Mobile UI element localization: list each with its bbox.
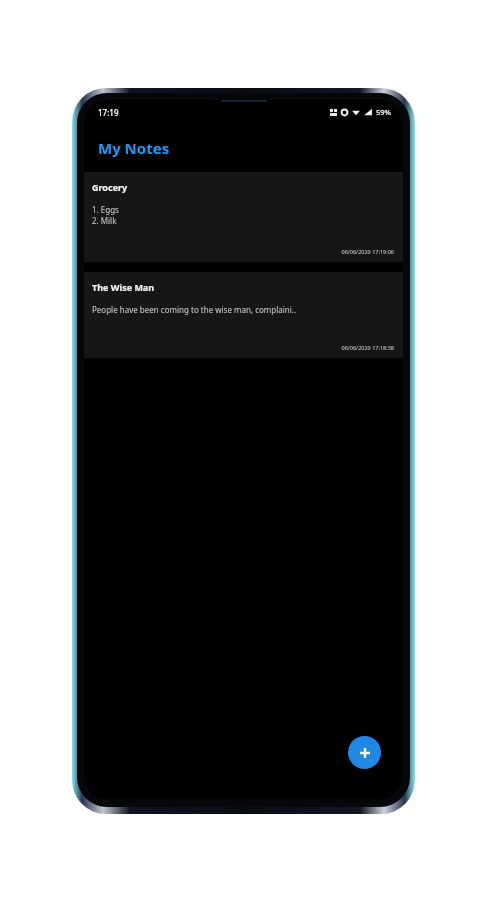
button[interactable]: The Wise Man [84, 272, 403, 358]
staticText: My Notes [98, 138, 170, 158]
staticText: Grocery [92, 181, 128, 193]
staticText: 1. Eggs 2. Milk [92, 204, 119, 226]
button[interactable]: Add note [348, 736, 381, 769]
staticText: 06/06/2020 17:19:06 [341, 248, 394, 255]
staticText: 06/06/2020 17:18:38 [341, 344, 394, 351]
staticText: 59% [376, 107, 391, 117]
staticText: 17:19 [98, 107, 119, 118]
staticText: People have been coming to the wise man,… [92, 304, 297, 315]
button[interactable]: Grocery [84, 172, 403, 262]
staticText: The Wise Man [92, 281, 155, 293]
